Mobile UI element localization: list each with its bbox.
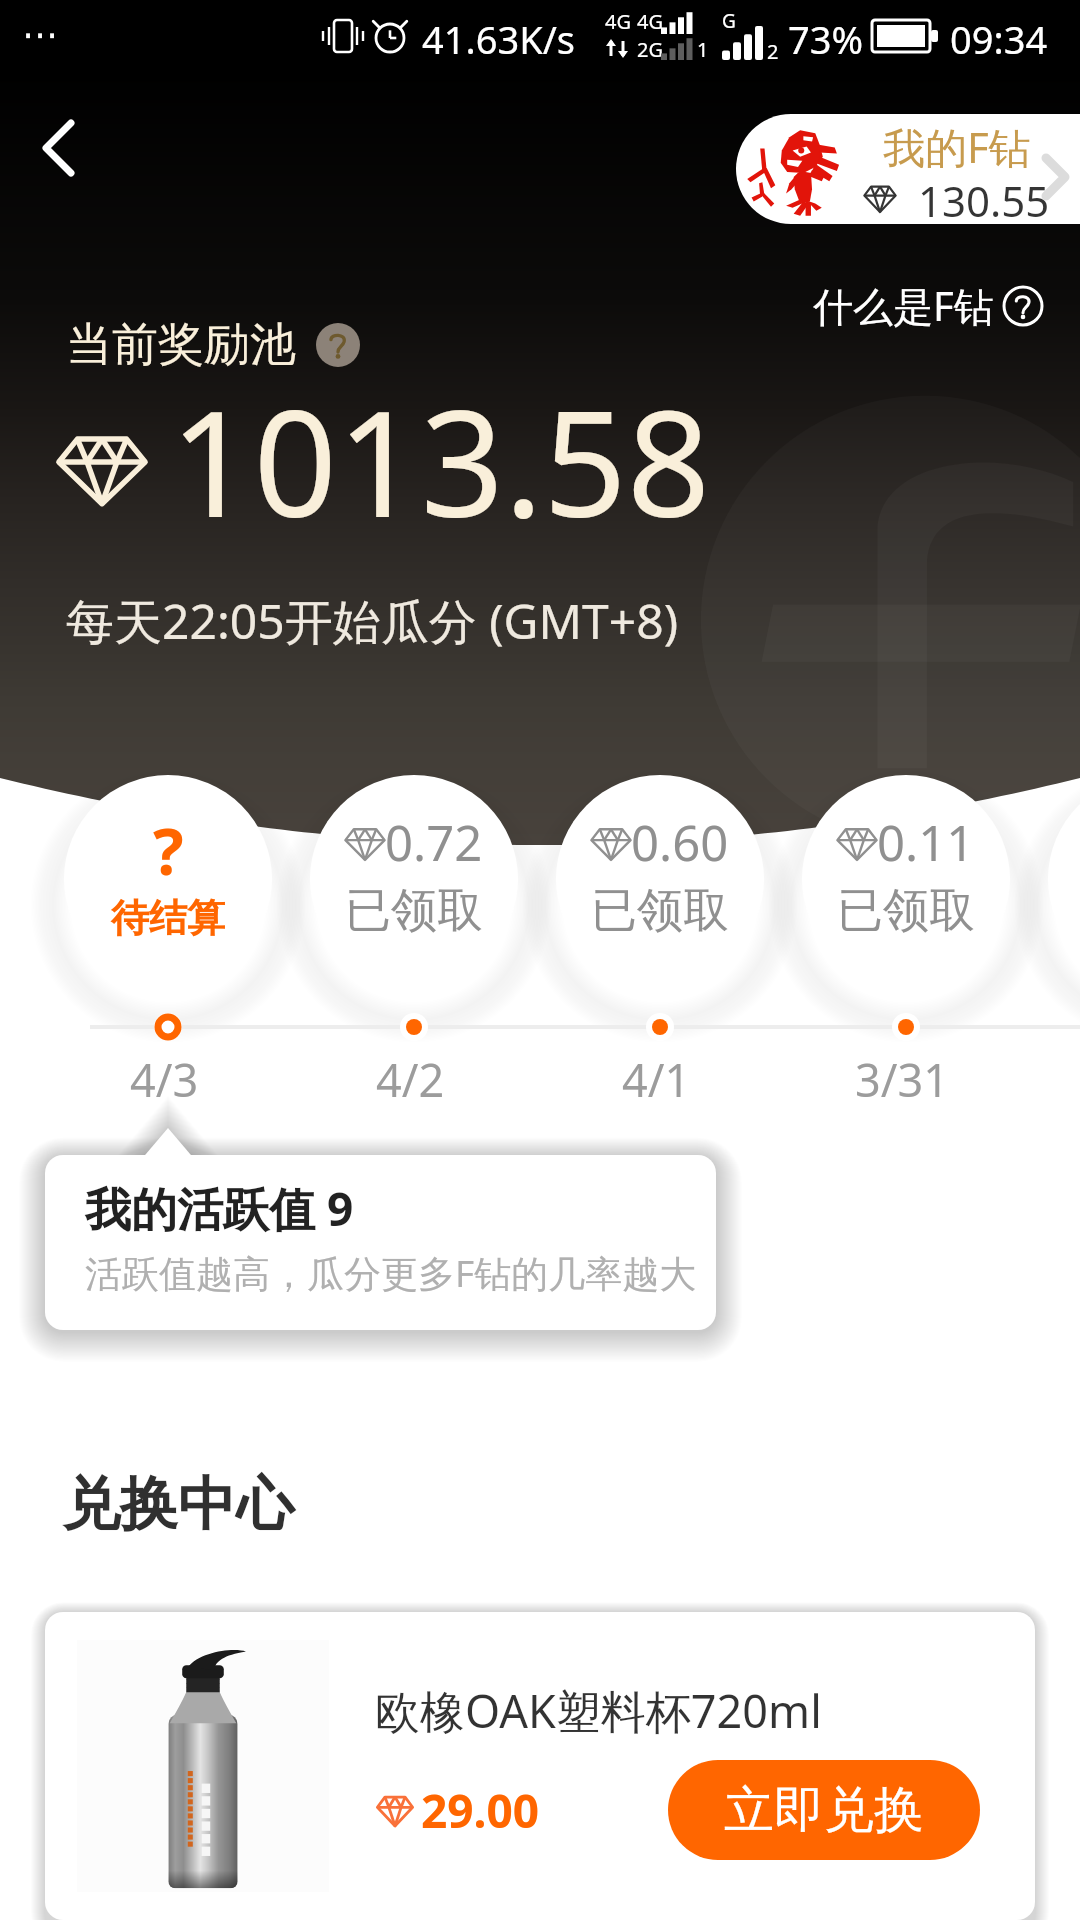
- staticText: ?: [153, 807, 184, 894]
- staticText: G: [722, 8, 736, 34]
- staticText: 4/2: [376, 1049, 445, 1110]
- button[interactable]: 我的活跃值 9: [45, 1155, 716, 1330]
- staticText: 已领取: [837, 882, 975, 940]
- button[interactable]: 欧橡OAK塑料杯720ml: [45, 1612, 1035, 1920]
- button[interactable]: 0.11: [802, 770, 1010, 978]
- staticText: 1013.58: [170, 361, 711, 560]
- staticText: 1: [697, 36, 709, 63]
- staticText: 每天22:05开始瓜分 (GMT+8): [66, 588, 679, 654]
- staticText: 2G: [637, 36, 663, 63]
- staticText: 09:34: [950, 13, 1048, 65]
- staticText: 当前奖励池: [66, 316, 296, 374]
- staticText: 3/31: [855, 1049, 949, 1110]
- staticText: 41.63K/s: [422, 13, 575, 65]
- button[interactable]: Back: [12, 102, 104, 194]
- staticText: 4/3: [130, 1049, 199, 1110]
- staticText: 已领取: [591, 882, 729, 940]
- staticText: 4/1: [622, 1049, 691, 1110]
- staticText: 0.60: [631, 809, 729, 876]
- staticText: 兑换中心: [62, 1468, 294, 1541]
- staticText: 立即兑换: [724, 1779, 924, 1842]
- staticText: 我的F钻: [883, 118, 1031, 175]
- button[interactable]: 0.72: [310, 770, 518, 978]
- button[interactable]: 我的F钻: [736, 114, 1080, 224]
- staticText: 4G: [605, 8, 631, 35]
- staticText: 4G: [637, 8, 663, 35]
- staticText: 我的活跃值 9: [85, 1177, 354, 1240]
- staticText: 0.72: [385, 809, 483, 876]
- button[interactable]: 什么是F钻: [813, 278, 1044, 333]
- staticText: 欧橡OAK塑料杯720ml: [375, 1680, 822, 1741]
- staticText: 29.00: [421, 1779, 540, 1842]
- staticText: 73%: [788, 13, 864, 65]
- button[interactable]: 立即兑换: [668, 1760, 980, 1860]
- button[interactable]: 0.60: [556, 770, 764, 978]
- staticText: 2: [767, 38, 779, 65]
- staticText: ⋯: [22, 14, 58, 56]
- staticText: 已领取: [345, 882, 483, 940]
- staticText: 活跃值越高，瓜分更多F钻的几率越大: [85, 1247, 716, 1298]
- staticText: 130.55: [918, 172, 1050, 224]
- button[interactable]: Help: [316, 323, 360, 367]
- staticText: 0.11: [877, 809, 975, 876]
- button[interactable]: ?: [64, 770, 272, 978]
- staticText: 什么是F钻: [813, 278, 994, 333]
- staticText: 待结算: [111, 894, 225, 942]
